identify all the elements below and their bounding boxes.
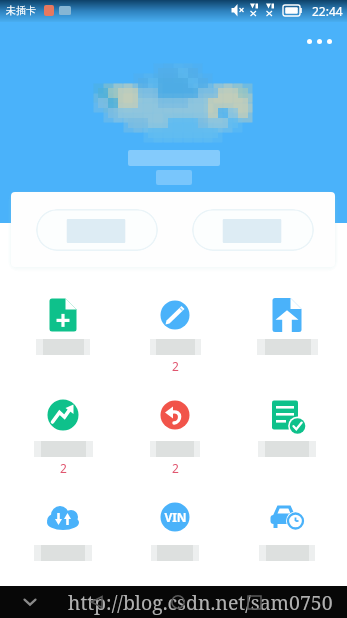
button[interactable] — [192, 209, 314, 251]
button[interactable]: Sync data — [8, 497, 118, 561]
other: Edit order — [155, 295, 195, 335]
other: Checklist — [267, 395, 307, 435]
other: Sync data — [43, 497, 83, 537]
other: Upload — [267, 295, 307, 335]
button[interactable]: Statistics — [8, 395, 118, 476]
other: New order — [43, 295, 83, 335]
button[interactable]: Hide keyboard — [14, 586, 46, 618]
button[interactable]: More options — [297, 28, 341, 54]
button[interactable] — [36, 209, 158, 251]
other: Service history — [267, 497, 307, 537]
other: Return — [155, 395, 195, 435]
button[interactable]: Checklist — [232, 395, 342, 457]
button[interactable]: Return — [120, 395, 230, 476]
staticText: 2 — [172, 358, 179, 374]
other: Statistics — [43, 395, 83, 435]
button[interactable]: Back — [82, 587, 112, 617]
button[interactable]: Home — [163, 587, 193, 617]
staticText: 2 — [172, 460, 179, 476]
staticText: 22:44 — [312, 3, 343, 19]
button[interactable]: VIN lookup — [120, 497, 230, 561]
button[interactable]: Service history — [232, 497, 342, 561]
staticText: http://blog.csdn.net/sam0750 — [68, 589, 333, 616]
staticText: VIN — [164, 509, 187, 525]
button[interactable]: Edit order — [120, 295, 230, 374]
staticText: 未插卡 — [6, 4, 36, 17]
button[interactable]: New order — [8, 295, 118, 355]
button[interactable]: Upload — [232, 295, 342, 355]
button[interactable]: Recent apps — [239, 587, 269, 617]
staticText: 2 — [60, 460, 67, 476]
other: VIN lookup — [155, 497, 195, 537]
